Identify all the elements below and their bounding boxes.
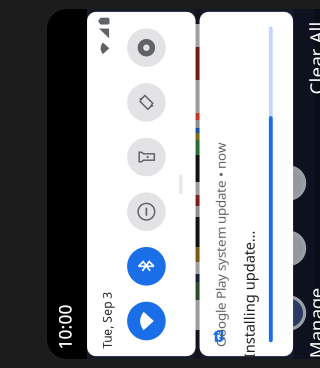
button[interactable]: Bluetooth [91, 118, 130, 157]
staticText: 10:00 [27, 44, 72, 67]
staticText: Tue, Sep 3 [28, 90, 85, 106]
button[interactable]: Do not disturb [146, 118, 185, 157]
staticText: Google Play system update • now [30, 203, 234, 220]
button[interactable]: Clear All [282, 295, 320, 319]
button[interactable]: Manage [19, 295, 90, 319]
button[interactable]: Flashlight [201, 118, 239, 157]
button[interactable]: Internet [37, 118, 75, 157]
button[interactable]: Auto rotate [255, 118, 294, 157]
button[interactable]: Screen record [310, 118, 320, 157]
staticText: Clear All [282, 295, 320, 319]
staticText: Manage [19, 295, 90, 319]
staticText: Installing update… [19, 230, 147, 250]
